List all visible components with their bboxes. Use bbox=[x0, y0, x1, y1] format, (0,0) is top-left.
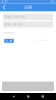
button[interactable]: Back bbox=[0, 4, 9, 11]
staticText: 请输入手机号码 bbox=[4, 15, 25, 19]
staticText: 4G bbox=[50, 0, 54, 3]
staticText: 注 册 bbox=[5, 39, 12, 42]
button[interactable]: 注 册 bbox=[4, 39, 14, 43]
staticText: 我已阅读并同意用户协议 bbox=[3, 32, 14, 33]
staticText: 请输入验证码 bbox=[4, 23, 22, 26]
button[interactable]: Home bbox=[27, 95, 30, 98]
staticText: 注册 bbox=[24, 5, 32, 10]
staticText: 已有账号？立即登录 bbox=[38, 40, 47, 41]
staticText: 9:41 bbox=[2, 0, 9, 3]
button[interactable]: Back bbox=[12, 94, 15, 99]
button[interactable]: 请输入验证码 bbox=[3, 21, 53, 28]
button[interactable]: 请输入手机号码 bbox=[3, 14, 53, 20]
button[interactable]: 我已阅读并同意用户协议 bbox=[3, 31, 14, 34]
button[interactable]: Recents bbox=[42, 95, 44, 98]
